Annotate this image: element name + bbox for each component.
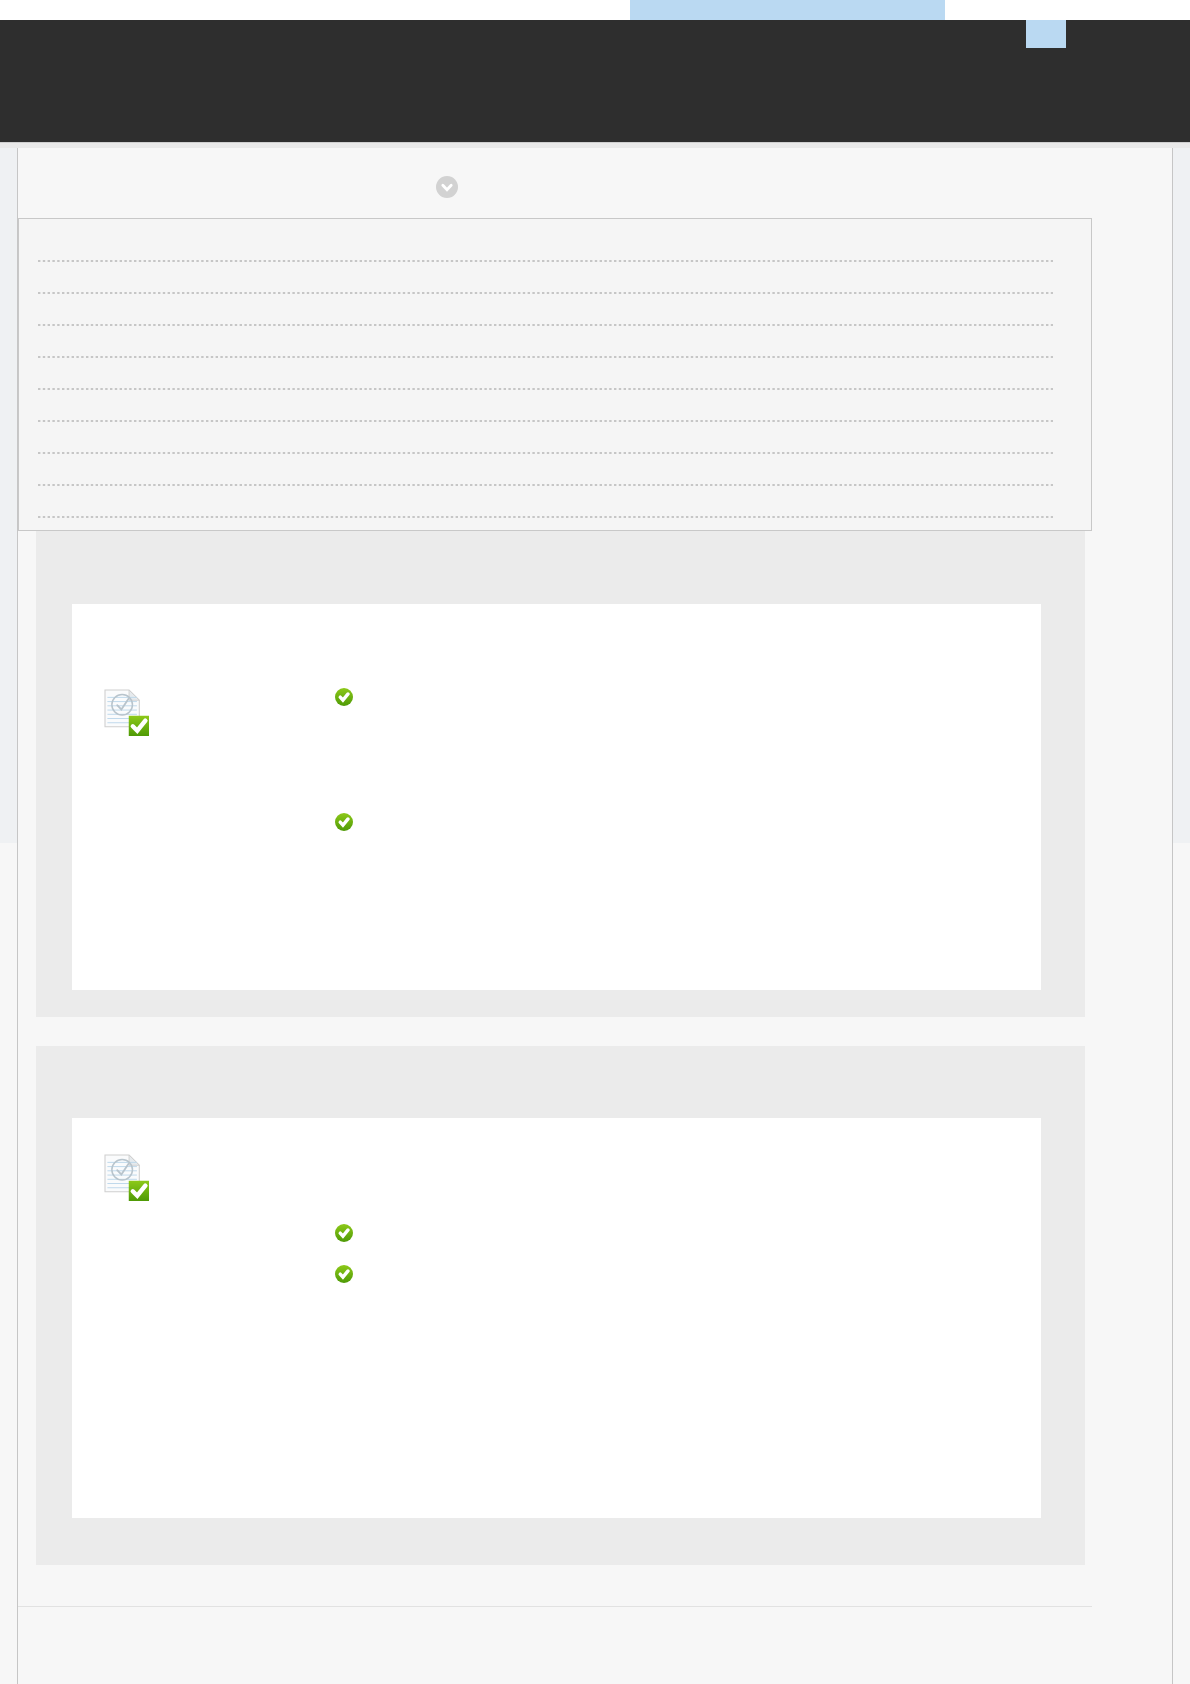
button[interactable] <box>36 1046 1085 1565</box>
button[interactable] <box>0 20 1190 142</box>
button[interactable]: Validated document <box>105 690 149 736</box>
button[interactable] <box>18 218 1092 531</box>
button[interactable] <box>36 531 1085 1017</box>
button[interactable]: Expand section <box>436 176 458 198</box>
button[interactable]: Validated document <box>105 1155 149 1201</box>
